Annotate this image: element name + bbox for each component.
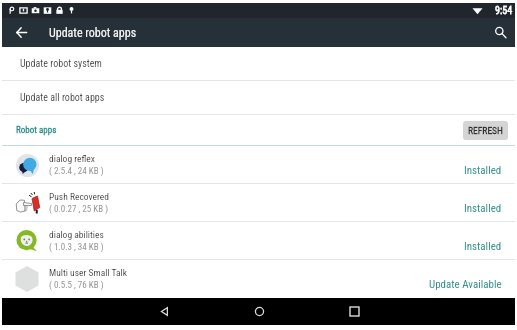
staticText: REFRESH — [468, 125, 503, 136]
button[interactable]: Recent apps — [334, 298, 374, 325]
staticText: ( 0.5.5 , 76 KB ) — [49, 280, 104, 291]
staticText: 9:54 — [495, 5, 513, 17]
staticText: Update all robot apps — [20, 92, 105, 104]
staticText: dialog abilities — [49, 229, 104, 240]
button[interactable]: Push Recovered — [2, 184, 515, 221]
staticText: Robot apps — [16, 125, 57, 136]
button[interactable]: Back — [144, 298, 184, 325]
staticText: dialog reflex — [49, 153, 95, 164]
staticText: Update robot apps — [49, 26, 137, 40]
button[interactable]: Home — [239, 298, 279, 325]
button[interactable]: Search — [486, 18, 515, 47]
staticText: ( 2.5.4 , 24 KB ) — [49, 166, 104, 177]
button[interactable]: Multi user Small Talk — [2, 260, 515, 297]
button[interactable]: Update all robot apps — [2, 81, 515, 114]
button[interactable]: dialog reflex — [2, 146, 515, 183]
staticText: Update Available — [429, 278, 502, 291]
staticText: Multi user Small Talk — [49, 267, 127, 278]
staticText: ( 0.0.27 , 25 KB ) — [49, 204, 109, 215]
staticText: Installed — [464, 164, 502, 177]
staticText: Installed — [464, 240, 502, 253]
button[interactable]: REFRESH — [463, 121, 508, 140]
staticText: Push Recovered — [49, 191, 109, 202]
staticText: Update robot system — [20, 58, 102, 70]
button[interactable]: dialog abilities — [2, 222, 515, 259]
staticText: ( 1.0.3 , 34 KB ) — [49, 242, 104, 253]
button[interactable]: Navigate up — [2, 18, 41, 47]
button[interactable]: Update robot system — [2, 47, 515, 80]
staticText: Installed — [464, 202, 502, 215]
